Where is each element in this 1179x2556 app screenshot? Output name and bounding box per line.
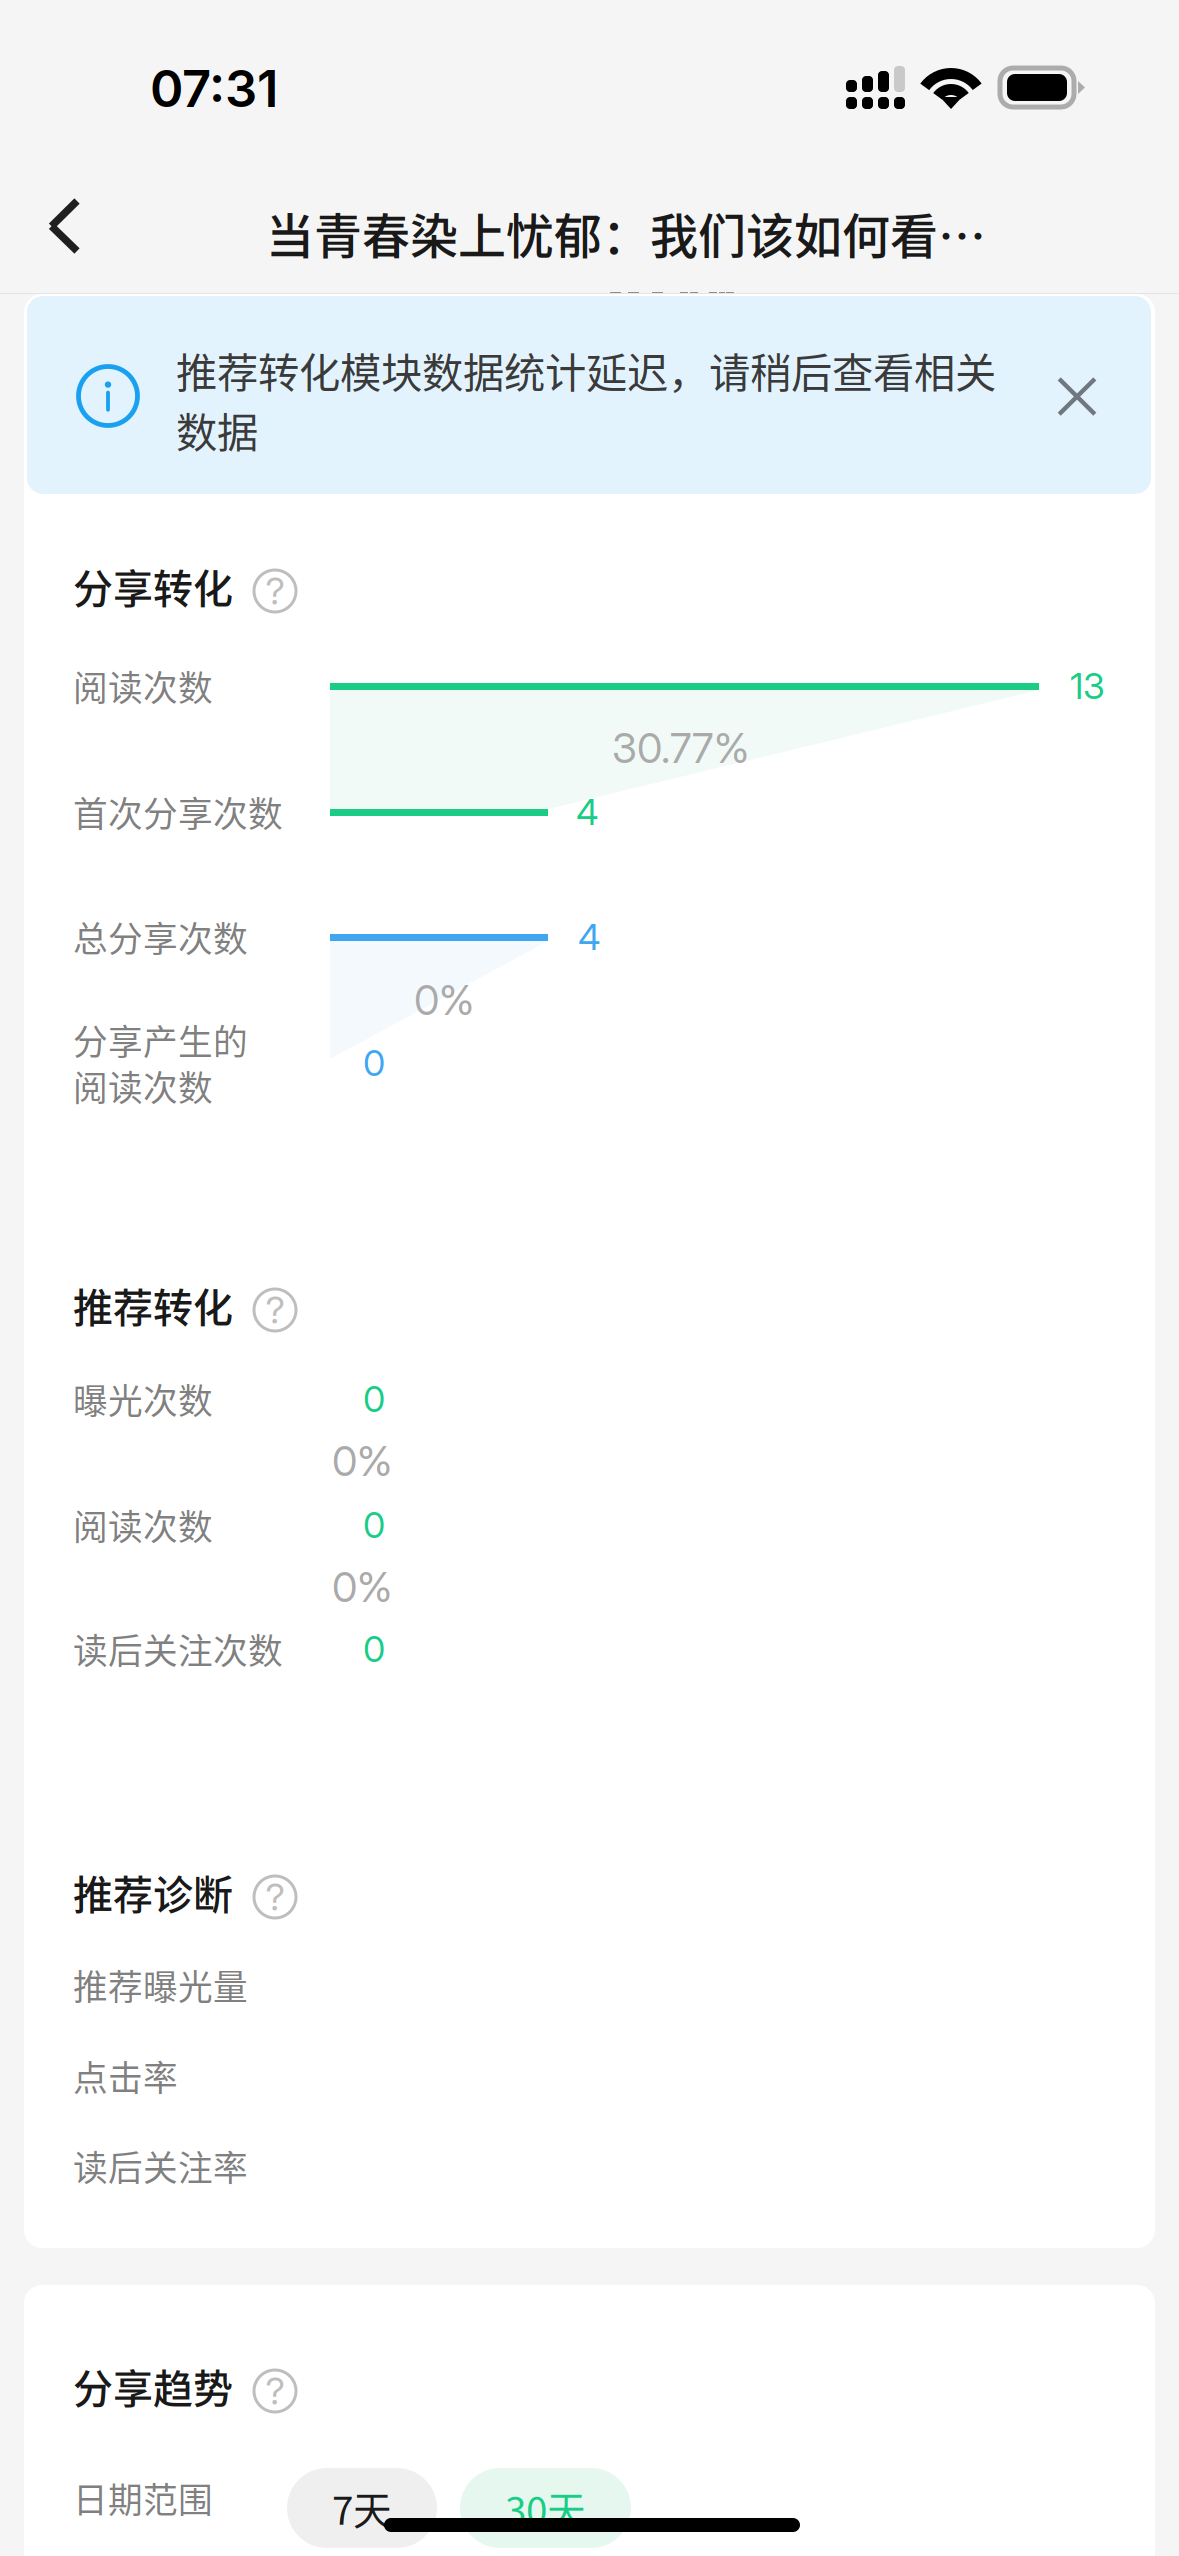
- button[interactable]: Back: [0, 173, 110, 283]
- staticText: 曝光次数: [73, 1374, 213, 1424]
- staticText: 分享转化: [73, 557, 233, 615]
- staticText: ?: [265, 568, 284, 614]
- staticText: 7天: [332, 2480, 392, 2536]
- button[interactable]: Help: [254, 1876, 296, 1918]
- staticText: ?: [265, 2368, 284, 2414]
- button[interactable]: Help: [254, 570, 296, 612]
- staticText: 0: [363, 1041, 385, 1085]
- staticText: 首次分享次数: [73, 787, 283, 837]
- staticText: 0%: [414, 975, 474, 1025]
- button[interactable]: Help: [254, 1289, 296, 1331]
- staticText: 13: [1070, 664, 1105, 708]
- staticText: 当青春染上忧郁：我们该如何看…: [266, 198, 986, 267]
- staticText: 30天: [505, 2480, 586, 2536]
- staticText: 07:31: [150, 58, 278, 119]
- staticText: 推荐转化模块数据统计延迟，请稍后查看相关 数据: [176, 340, 996, 460]
- staticText: 4: [576, 790, 599, 834]
- staticText: 推荐诊断: [73, 1863, 233, 1921]
- staticText: 阅读次数: [73, 1061, 213, 1111]
- staticText: 0%: [332, 1436, 392, 1486]
- staticText: 阅读次数: [73, 661, 213, 711]
- staticText: 读后关注次数: [73, 1624, 283, 1674]
- button[interactable]: Dismiss: [1027, 347, 1127, 447]
- staticText: ?: [265, 1287, 284, 1333]
- staticText: 分享趋势: [73, 2357, 233, 2415]
- button[interactable]: Help: [254, 2370, 296, 2412]
- staticText: 总分享次数: [73, 912, 248, 962]
- staticText: 0: [363, 1377, 385, 1421]
- staticText: 读后关注率: [73, 2141, 248, 2191]
- staticText: 点击率: [73, 2051, 178, 2101]
- staticText: ?: [265, 1874, 284, 1920]
- staticText: 阅读次数: [73, 1500, 213, 1550]
- button[interactable]: 30天: [460, 2468, 631, 2548]
- staticText: 0: [363, 1627, 385, 1671]
- staticText: 日期范围: [73, 2473, 213, 2523]
- button[interactable]: 7天: [287, 2468, 437, 2548]
- staticText: 0%: [332, 1562, 392, 1612]
- staticText: 30.77%: [612, 723, 749, 773]
- staticText: 0: [363, 1503, 385, 1547]
- staticText: 推荐转化: [73, 1276, 233, 1334]
- staticText: 分享产生的: [73, 1015, 248, 1065]
- staticText: 推荐曝光量: [73, 1960, 248, 2010]
- staticText: 4: [578, 915, 601, 959]
